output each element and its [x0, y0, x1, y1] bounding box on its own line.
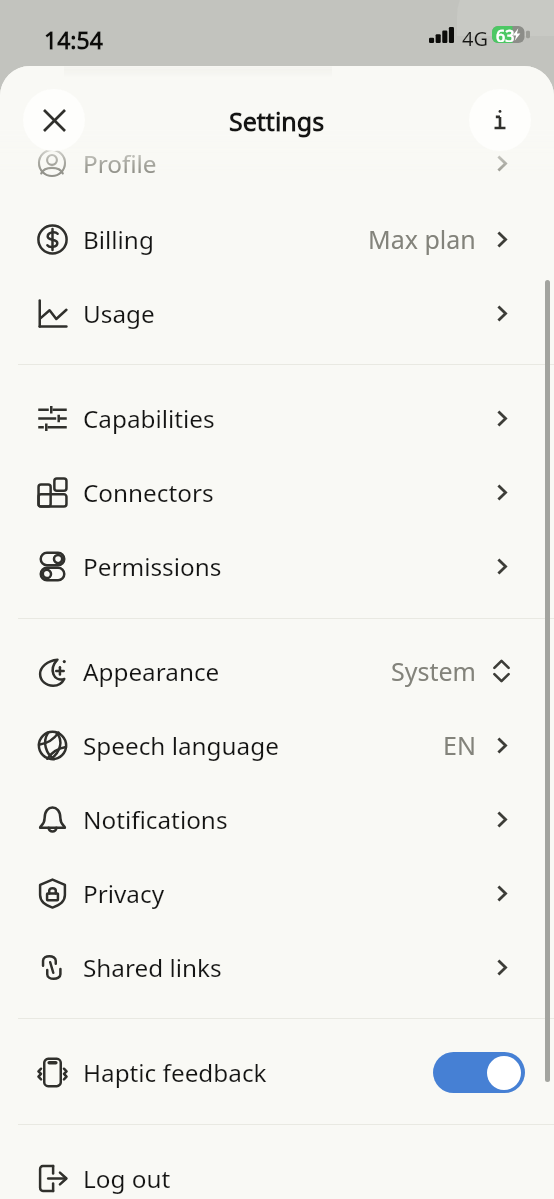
button[interactable]: Usage — [0, 276, 554, 350]
staticText: Permissions — [83, 550, 222, 583]
staticText: Privacy — [83, 877, 165, 910]
button[interactable]: Shared links — [0, 930, 554, 1004]
button[interactable]: Billing — [0, 202, 554, 276]
button[interactable]: Close — [23, 89, 85, 151]
staticText: EN — [443, 728, 476, 762]
button[interactable]: Privacy — [0, 856, 554, 930]
staticText: 14:54 — [44, 24, 103, 55]
staticText: Max plan — [368, 222, 476, 256]
staticText: Speech language — [83, 729, 279, 762]
button[interactable]: Connectors — [0, 455, 554, 529]
staticText: Notifications — [83, 803, 228, 836]
button[interactable]: Speech language — [0, 708, 554, 782]
staticText: Shared links — [83, 951, 222, 984]
button[interactable]: Profile — [0, 126, 554, 200]
staticText: System — [391, 654, 476, 688]
staticText: Capabilities — [83, 402, 215, 435]
staticText: Appearance — [83, 655, 220, 688]
button[interactable]: Info — [469, 89, 531, 151]
staticText: 63 — [496, 25, 515, 42]
staticText: Billing — [83, 223, 154, 256]
staticText: Log out — [83, 1162, 171, 1195]
staticText: Profile — [83, 147, 157, 180]
button[interactable]: Capabilities — [0, 381, 554, 455]
staticText: Connectors — [83, 476, 214, 509]
staticText: Usage — [83, 297, 155, 330]
button[interactable]: Haptic feedback — [0, 1035, 554, 1109]
button[interactable]: Haptic feedback toggle — [433, 1052, 525, 1093]
staticText: Haptic feedback — [83, 1056, 267, 1089]
button[interactable]: Log out — [0, 1141, 554, 1199]
staticText: Settings — [229, 104, 325, 138]
staticText: 4G — [462, 25, 488, 52]
button[interactable]: Notifications — [0, 782, 554, 856]
button[interactable]: Appearance — [0, 634, 554, 708]
button[interactable]: Permissions — [0, 529, 554, 603]
